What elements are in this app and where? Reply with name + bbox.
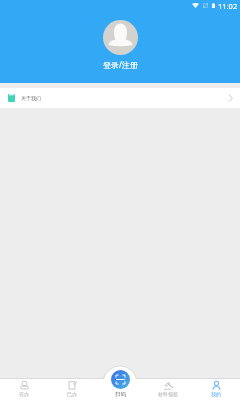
- button[interactable]: 在办: [0, 366, 48, 400]
- button[interactable]: 扫码: [111, 370, 130, 389]
- staticText: 已办: [67, 391, 77, 397]
- staticText: 关于我们: [21, 95, 41, 101]
- staticText: 11:02: [218, 1, 238, 11]
- button[interactable]: 已办: [48, 366, 96, 400]
- button[interactable]: 关于我们: [0, 88, 240, 108]
- staticText: 在办: [19, 391, 29, 397]
- button[interactable]: 材料报签: [144, 366, 192, 400]
- button[interactable]: 我的: [192, 366, 240, 400]
- staticText: 登录/注册: [103, 59, 138, 70]
- staticText: 材料报签: [158, 391, 178, 397]
- staticText: 扫码: [115, 391, 126, 398]
- staticText: 我的: [211, 391, 221, 397]
- button[interactable]: Login avatar: [103, 20, 138, 55]
